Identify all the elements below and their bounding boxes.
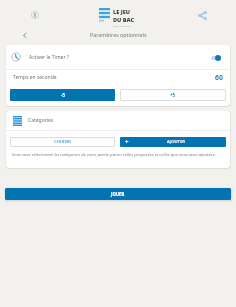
- button[interactable]: Activer le Timer ?: [6, 45, 230, 69]
- staticText: Vous avez sélectionné les catégories de …: [12, 151, 226, 157]
- button[interactable]: +: [120, 137, 226, 147]
- staticText: Activer le Timer ?: [29, 54, 69, 61]
- staticText: -5: [61, 92, 65, 98]
- button[interactable]: -5: [10, 89, 115, 101]
- button[interactable]: JOUER: [5, 188, 231, 200]
- staticText: CHOISIR: [54, 139, 71, 145]
- button[interactable]: Information: [26, 6, 44, 24]
- staticText: JOUER: [111, 191, 125, 197]
- staticText: Temps en seconde: [13, 74, 57, 81]
- staticText: +: [125, 138, 129, 146]
- staticText: +5: [170, 92, 176, 98]
- button[interactable]: +5: [120, 89, 226, 101]
- button[interactable]: Retour: [17, 28, 31, 42]
- staticText: 60: [215, 73, 223, 82]
- button[interactable]: CHOISIR: [10, 137, 115, 147]
- button[interactable]: Catégories: [6, 111, 230, 130]
- button[interactable]: Partager: [193, 6, 211, 24]
- staticText: Catégories: [28, 117, 54, 124]
- staticText: le jeu de societe: [113, 24, 132, 27]
- staticText: AJOUTER: [167, 139, 185, 145]
- staticText: Paramètres optionnels: [90, 31, 147, 38]
- staticText: LE JEU: [113, 8, 131, 16]
- staticText: DU BAC: [113, 16, 135, 24]
